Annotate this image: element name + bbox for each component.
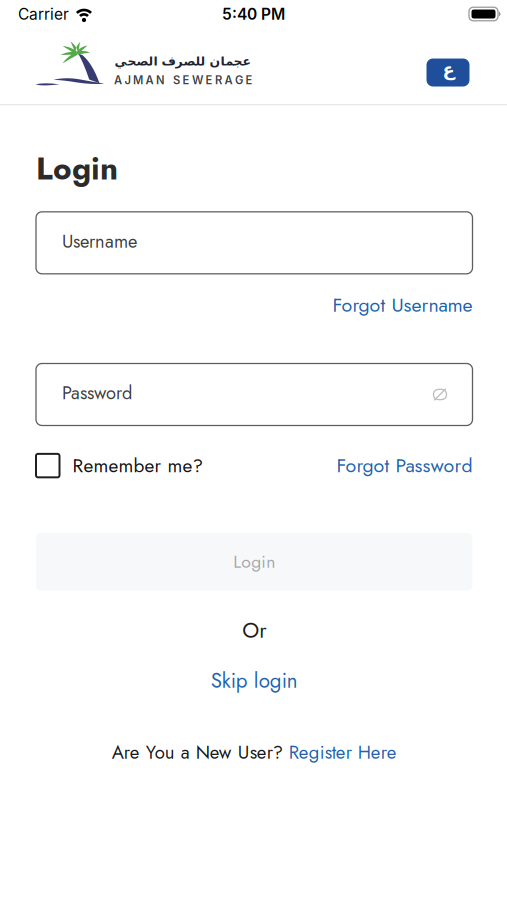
button[interactable]: Show password [432, 387, 448, 401]
button[interactable]: Login [36, 533, 472, 591]
staticText: ع [442, 59, 454, 80]
staticText: Are You a New User? [112, 739, 289, 766]
staticText: Or [242, 615, 266, 646]
staticText: 5:40 PM [222, 5, 285, 23]
button[interactable]: Remember me? [36, 452, 203, 479]
staticText: A [224, 73, 232, 87]
staticText: Register Here [289, 739, 397, 766]
staticText: G [235, 73, 243, 87]
staticText: S [173, 73, 180, 87]
staticText: M [133, 73, 143, 87]
staticText: Remember me? [72, 452, 203, 479]
staticText: Forgot Username [332, 291, 472, 319]
button[interactable]: Forgot Username [332, 291, 472, 319]
staticText: A [145, 73, 153, 87]
staticText: Username [62, 228, 137, 254]
button[interactable]: Skip login [211, 666, 298, 695]
staticText: N [156, 73, 165, 87]
staticText: A [114, 73, 122, 87]
staticText: Skip login [211, 666, 298, 695]
staticText: E [205, 73, 212, 87]
staticText: E [182, 73, 189, 87]
staticText: عجمان للصرف الصحي [114, 54, 250, 68]
staticText: Login [36, 146, 118, 191]
staticText: Carrier [18, 5, 69, 23]
button[interactable]: العربية [426, 58, 469, 86]
button[interactable]: Register Here [289, 739, 397, 766]
button[interactable]: Forgot Password [336, 451, 472, 480]
staticText: E [245, 73, 252, 87]
staticText: W [192, 73, 203, 87]
staticText: J [124, 73, 130, 87]
staticText: Forgot Password [336, 451, 472, 480]
staticText: Password [62, 380, 132, 406]
button[interactable]: Password [36, 363, 472, 425]
staticText: Login [233, 549, 275, 574]
button[interactable]: Username [36, 212, 472, 274]
staticText: R [215, 73, 222, 87]
